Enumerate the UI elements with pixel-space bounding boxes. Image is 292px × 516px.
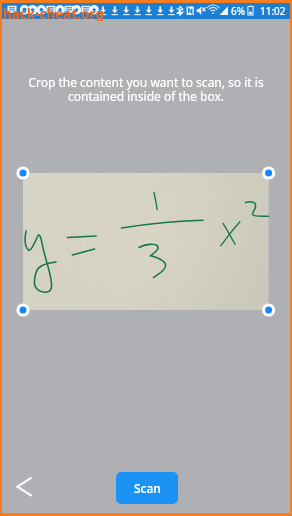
button[interactable]: Back bbox=[8, 469, 44, 505]
button[interactable]: Scan bbox=[116, 472, 178, 504]
staticText: 6% bbox=[231, 4, 246, 18]
staticText: 11:02 bbox=[260, 4, 286, 18]
staticText: hack-cheat.org bbox=[3, 5, 104, 21]
staticText: Scan bbox=[134, 480, 161, 496]
staticText: Crop the content you want to scan, so it… bbox=[16, 74, 276, 105]
